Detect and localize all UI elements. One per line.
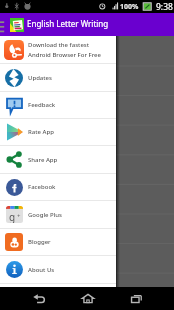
button[interactable]: Share App	[0, 146, 116, 174]
staticText: Download the fastest	[28, 41, 90, 49]
button[interactable]: Download the fastest	[0, 36, 116, 64]
staticText: 100%	[120, 2, 139, 12]
staticText: English Letter Writing	[27, 18, 109, 29]
button[interactable]: Blogger	[0, 229, 116, 256]
staticText: About Us	[28, 266, 55, 274]
button[interactable]: Updates	[0, 64, 116, 92]
staticText: Google Plus	[28, 211, 62, 219]
button[interactable]: About Us	[0, 256, 116, 284]
button[interactable]: Rate App	[0, 119, 116, 146]
staticText: g	[9, 210, 16, 223]
staticText: +	[17, 212, 21, 220]
button[interactable]: Feedback	[0, 92, 116, 119]
staticText: Updates	[28, 74, 52, 82]
staticText: Feedback	[28, 101, 56, 109]
button[interactable]: Recent apps	[126, 288, 147, 309]
staticText: Rate App	[28, 128, 54, 136]
button[interactable]: Facebook	[0, 174, 116, 201]
button[interactable]: Back	[28, 288, 49, 309]
staticText: Blogger	[28, 238, 51, 246]
button[interactable]: g	[0, 201, 116, 229]
button[interactable]: Home	[77, 288, 98, 309]
button[interactable]: Open navigation drawer	[0, 17, 6, 33]
staticText: Facebook	[28, 183, 56, 191]
staticText: Android Browser For Free	[28, 51, 101, 59]
staticText: 9:38	[156, 1, 173, 13]
staticText: Share App	[28, 156, 58, 164]
